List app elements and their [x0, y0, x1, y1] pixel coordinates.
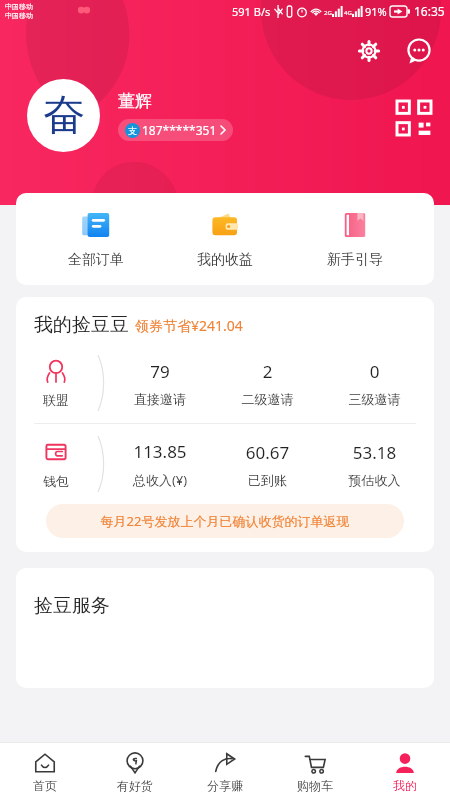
staticText: 捡豆服务: [34, 594, 110, 618]
staticText: 2G: [324, 9, 332, 17]
button[interactable]: 2: [214, 360, 321, 407]
staticText: 60.67: [214, 441, 321, 464]
button[interactable]: 有好货: [90, 751, 180, 793]
staticText: 总收入(¥): [106, 471, 214, 489]
button[interactable]: 每月22号发放上个月已确认收货的订单返现: [46, 504, 404, 538]
button[interactable]: 我的收益: [175, 207, 275, 271]
button[interactable]: 0: [321, 360, 428, 407]
button[interactable]: 53.18: [321, 441, 428, 488]
staticText: 16:35: [414, 3, 445, 19]
button[interactable]: 60.67: [214, 441, 321, 488]
staticText: 0: [321, 360, 428, 383]
staticText: 4G: [344, 9, 352, 17]
button[interactable]: Messages: [402, 34, 436, 68]
button[interactable]: 联盟: [16, 358, 96, 408]
staticText: 2: [214, 360, 321, 383]
staticText: 中国移动: [5, 11, 33, 20]
staticText: 支: [128, 125, 137, 136]
staticText: 187*****351: [142, 122, 217, 138]
staticText: 预估收入: [321, 472, 428, 488]
button[interactable]: 支: [118, 119, 233, 141]
staticText: 中国移动: [5, 2, 33, 11]
button[interactable]: 首页: [0, 751, 90, 793]
staticText: 已到账: [214, 472, 321, 488]
staticText: 全部订单: [46, 251, 146, 269]
button[interactable]: 奋: [27, 79, 100, 152]
staticText: 钱包: [43, 473, 69, 489]
button[interactable]: 我的: [360, 751, 450, 793]
staticText: 每月22号发放上个月已确认收货的订单返现: [46, 512, 404, 530]
button[interactable]: 分享赚: [180, 751, 270, 793]
staticText: 有好货: [90, 778, 180, 793]
staticText: 首页: [0, 778, 90, 793]
staticText: 奋: [43, 89, 85, 142]
staticText: 我的捡豆豆: [34, 313, 129, 337]
button[interactable]: 113.85: [106, 440, 214, 489]
staticText: 591 B/s: [232, 4, 271, 19]
staticText: 购物车: [270, 778, 360, 793]
staticText: 113.85: [106, 440, 214, 463]
staticText: 我的收益: [175, 251, 275, 269]
staticText: 分享赚: [180, 778, 270, 793]
staticText: 我的: [360, 778, 450, 793]
button[interactable]: Settings: [352, 34, 386, 68]
staticText: 二级邀请: [214, 391, 321, 407]
button[interactable]: 全部订单: [46, 207, 146, 271]
staticText: 79: [106, 360, 214, 383]
button[interactable]: 购物车: [270, 751, 360, 793]
button[interactable]: 79: [106, 360, 214, 407]
staticText: 领券节省¥241.04: [135, 316, 243, 335]
staticText: 91%: [365, 4, 387, 19]
staticText: 联盟: [43, 392, 69, 408]
staticText: 直接邀请: [106, 391, 214, 407]
staticText: 三级邀请: [321, 391, 428, 407]
button[interactable]: 新手引导: [305, 207, 405, 271]
button[interactable]: QR code: [396, 100, 432, 136]
button[interactable]: 钱包: [16, 439, 96, 489]
staticText: 新手引导: [305, 251, 405, 269]
staticText: 53.18: [321, 441, 428, 464]
staticText: 董辉: [118, 91, 152, 112]
